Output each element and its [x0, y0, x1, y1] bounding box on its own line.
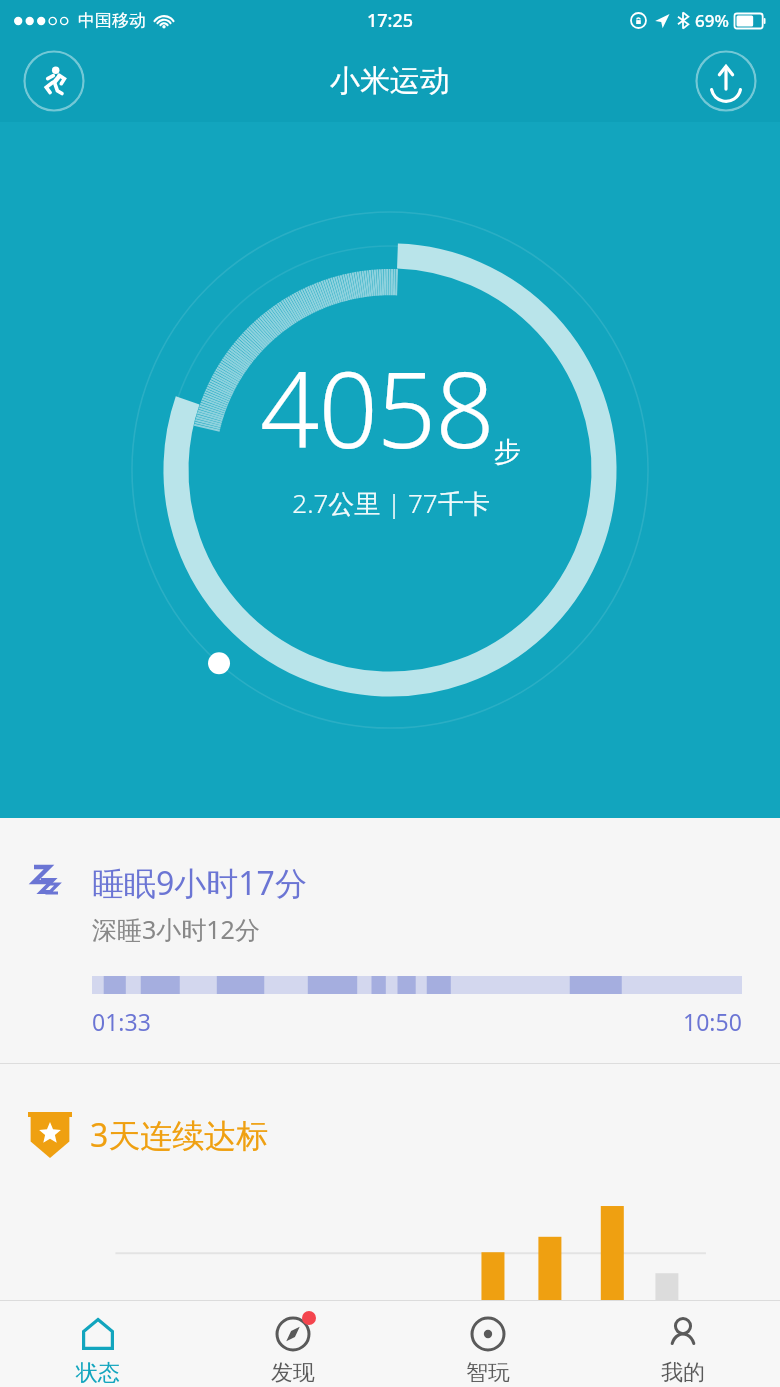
staticText: 发现: [271, 1359, 315, 1387]
button[interactable]: Start workout: [23, 50, 85, 112]
button[interactable]: 状态: [0, 1301, 195, 1387]
button[interactable]: 智玩: [390, 1301, 585, 1387]
button[interactable]: Sync: [695, 50, 757, 112]
staticText: 深睡3小时12分: [92, 912, 260, 946]
button[interactable]: 我的: [585, 1301, 780, 1387]
staticText: 10:50: [683, 1006, 742, 1037]
staticText: 4058: [260, 337, 494, 479]
staticText: 中国移动: [78, 10, 146, 31]
staticText: 69%: [695, 9, 729, 32]
staticText: 智玩: [466, 1359, 510, 1387]
staticText: 17:25: [367, 8, 414, 33]
staticText: 睡眠9小时17分: [92, 861, 307, 905]
staticText: 小米运动: [330, 62, 450, 100]
staticText: 3天连续达标: [90, 1113, 269, 1157]
staticText: 我的: [661, 1359, 705, 1387]
button[interactable]: 发现: [195, 1301, 390, 1387]
button[interactable]: 睡眠9小时17分: [0, 818, 780, 1063]
staticText: 步: [494, 435, 521, 469]
staticText: 2.7公里 | 77千卡: [292, 485, 490, 521]
button[interactable]: 3天连续达标: [0, 1064, 780, 1300]
staticText: 01:33: [92, 1006, 151, 1037]
staticText: 状态: [76, 1359, 120, 1387]
